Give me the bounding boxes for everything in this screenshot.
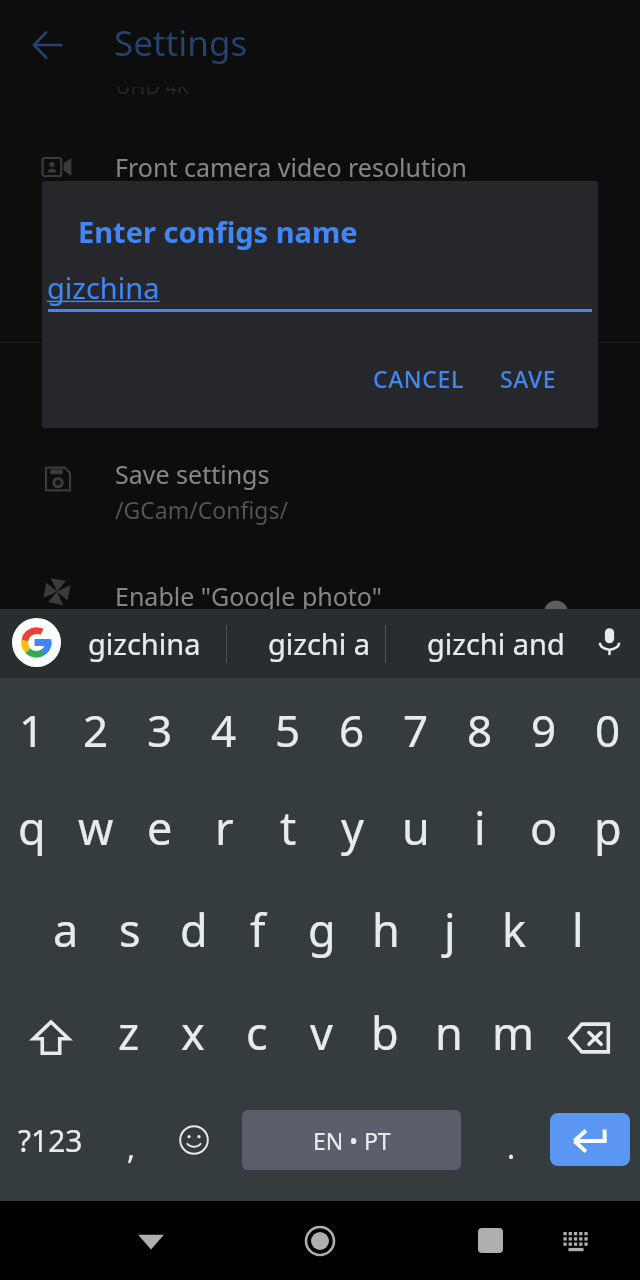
button[interactable]: d — [162, 893, 226, 965]
staticText: r — [215, 797, 234, 858]
button[interactable]: t — [256, 791, 320, 863]
button[interactable]: 7 — [384, 694, 448, 766]
button[interactable]: l — [546, 893, 610, 965]
button[interactable]: m — [481, 996, 545, 1068]
staticText: c — [246, 1002, 268, 1063]
button[interactable]: 0 — [576, 694, 640, 766]
button[interactable]: Google search — [12, 618, 61, 667]
staticText: m — [492, 1002, 535, 1063]
staticText: i — [474, 797, 486, 858]
button[interactable]: o — [512, 791, 576, 863]
button[interactable]: Setting icon — [39, 149, 75, 185]
staticText: CANCEL — [373, 363, 464, 394]
button[interactable]: u — [384, 791, 448, 863]
staticText: o — [530, 797, 558, 858]
staticText: gizchi and — [427, 624, 565, 663]
staticText: gizchina — [88, 624, 201, 663]
staticText: h — [372, 899, 400, 960]
staticText: u — [402, 797, 430, 858]
button[interactable]: 3 — [128, 694, 192, 766]
button[interactable]: Back — [16, 14, 78, 76]
staticText: 7 — [403, 700, 429, 760]
button[interactable]: Setting icon — [39, 573, 75, 609]
button[interactable]: Recent apps — [450, 1201, 530, 1280]
staticText: 0 — [595, 700, 621, 760]
button[interactable]: 4 — [192, 694, 256, 766]
button[interactable]: 9 — [512, 694, 576, 766]
button[interactable]: k — [482, 893, 546, 965]
button[interactable]: . — [482, 1112, 540, 1182]
staticText: 3 — [147, 700, 173, 760]
staticText: q — [18, 797, 46, 858]
button[interactable]: Enter — [550, 1113, 630, 1166]
button[interactable]: 8 — [448, 694, 512, 766]
staticText: gizchi a — [268, 624, 371, 663]
button[interactable]: q — [0, 791, 64, 863]
staticText: p — [594, 797, 622, 858]
staticText: . — [507, 1127, 516, 1168]
button[interactable]: gizchi and — [401, 609, 591, 678]
button[interactable]: v — [289, 996, 353, 1068]
staticText: 2 — [83, 700, 109, 760]
button[interactable]: c — [225, 996, 289, 1068]
staticText: f — [250, 899, 266, 960]
staticText: 9 — [531, 700, 557, 760]
staticText: , — [127, 1127, 136, 1168]
button[interactable]: ?123 — [6, 1102, 94, 1178]
button[interactable]: y — [320, 791, 384, 863]
staticText: 1 — [19, 700, 45, 760]
button[interactable]: Setting icon — [40, 461, 76, 497]
staticText: Enter configs name — [78, 212, 358, 251]
button[interactable]: gizchina — [66, 609, 222, 678]
button[interactable]: e — [128, 791, 192, 863]
button[interactable]: w — [64, 791, 128, 863]
button[interactable]: SAVE — [490, 356, 566, 400]
button[interactable]: Emoji — [165, 1102, 223, 1178]
button[interactable]: 1 — [0, 694, 64, 766]
button[interactable]: gizchi a — [240, 609, 398, 678]
button[interactable]: Switch keyboard — [536, 1201, 616, 1280]
staticText: Settings — [114, 19, 248, 67]
staticText: 8 — [467, 700, 493, 760]
button[interactable]: Space — [242, 1110, 461, 1170]
staticText: Front camera video resolution — [115, 150, 467, 184]
staticText: x — [181, 1002, 205, 1063]
button[interactable]: s — [98, 893, 162, 965]
button[interactable]: h — [354, 893, 418, 965]
button[interactable]: r — [192, 791, 256, 863]
button[interactable]: b — [353, 996, 417, 1068]
button[interactable]: x — [161, 996, 225, 1068]
staticText: a — [53, 899, 79, 960]
button[interactable]: a — [34, 893, 98, 965]
button[interactable]: Backspace — [548, 1000, 630, 1076]
staticText: 5 — [275, 700, 301, 760]
staticText: j — [444, 899, 456, 960]
button[interactable]: n — [417, 996, 481, 1068]
button[interactable]: , — [100, 1112, 162, 1182]
staticText: b — [371, 1002, 399, 1063]
button[interactable]: p — [576, 791, 640, 863]
staticText: d — [180, 899, 208, 960]
button[interactable]: g — [290, 893, 354, 965]
button[interactable]: CANCEL — [368, 356, 468, 400]
button[interactable]: z — [97, 996, 161, 1068]
button[interactable]: f — [226, 893, 290, 965]
button[interactable]: 6 — [320, 694, 384, 766]
staticText: s — [119, 899, 141, 960]
staticText: Enable "Google photo" — [115, 579, 382, 613]
staticText: y — [341, 797, 364, 858]
button[interactable]: 5 — [256, 694, 320, 766]
button[interactable]: Back — [111, 1201, 191, 1280]
button[interactable]: Home — [280, 1201, 360, 1280]
staticText: 4 — [211, 700, 237, 760]
button[interactable]: Voice input — [585, 617, 633, 665]
staticText: z — [118, 1002, 140, 1063]
staticText: t — [280, 797, 297, 858]
staticText: Save settings — [115, 457, 270, 491]
button[interactable]: Shift — [10, 1000, 92, 1076]
staticText: SAVE — [500, 363, 557, 394]
button[interactable]: j — [418, 893, 482, 965]
button[interactable]: i — [448, 791, 512, 863]
staticText: UHD 4K — [116, 87, 190, 100]
button[interactable]: 2 — [64, 694, 128, 766]
